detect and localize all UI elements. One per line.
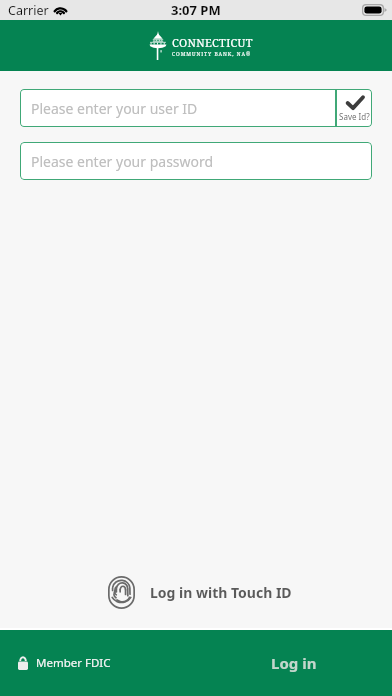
staticText: Log in with Touch ID: [150, 583, 292, 602]
staticText: Please enter your user ID: [31, 99, 198, 118]
staticText: Please enter your password: [31, 152, 214, 171]
button[interactable]: Save Id: [336, 89, 372, 127]
staticText: Log in: [271, 653, 317, 673]
button[interactable]: Log in: [196, 630, 392, 696]
staticText: Carrier: [8, 2, 49, 19]
staticText: 3:07 PM: [171, 1, 221, 19]
staticText: Save Id?: [339, 111, 370, 122]
button[interactable]: Log in with Touch ID: [0, 572, 392, 613]
button[interactable]: Member FDIC: [0, 645, 196, 681]
staticText: CONNECTICUT: [172, 35, 253, 50]
staticText: Member FDIC: [36, 655, 111, 671]
button[interactable]: Please enter your user ID: [20, 89, 336, 127]
staticText: COMMUNITY BANK, NA®: [172, 51, 252, 58]
button[interactable]: Please enter your password: [20, 142, 372, 180]
